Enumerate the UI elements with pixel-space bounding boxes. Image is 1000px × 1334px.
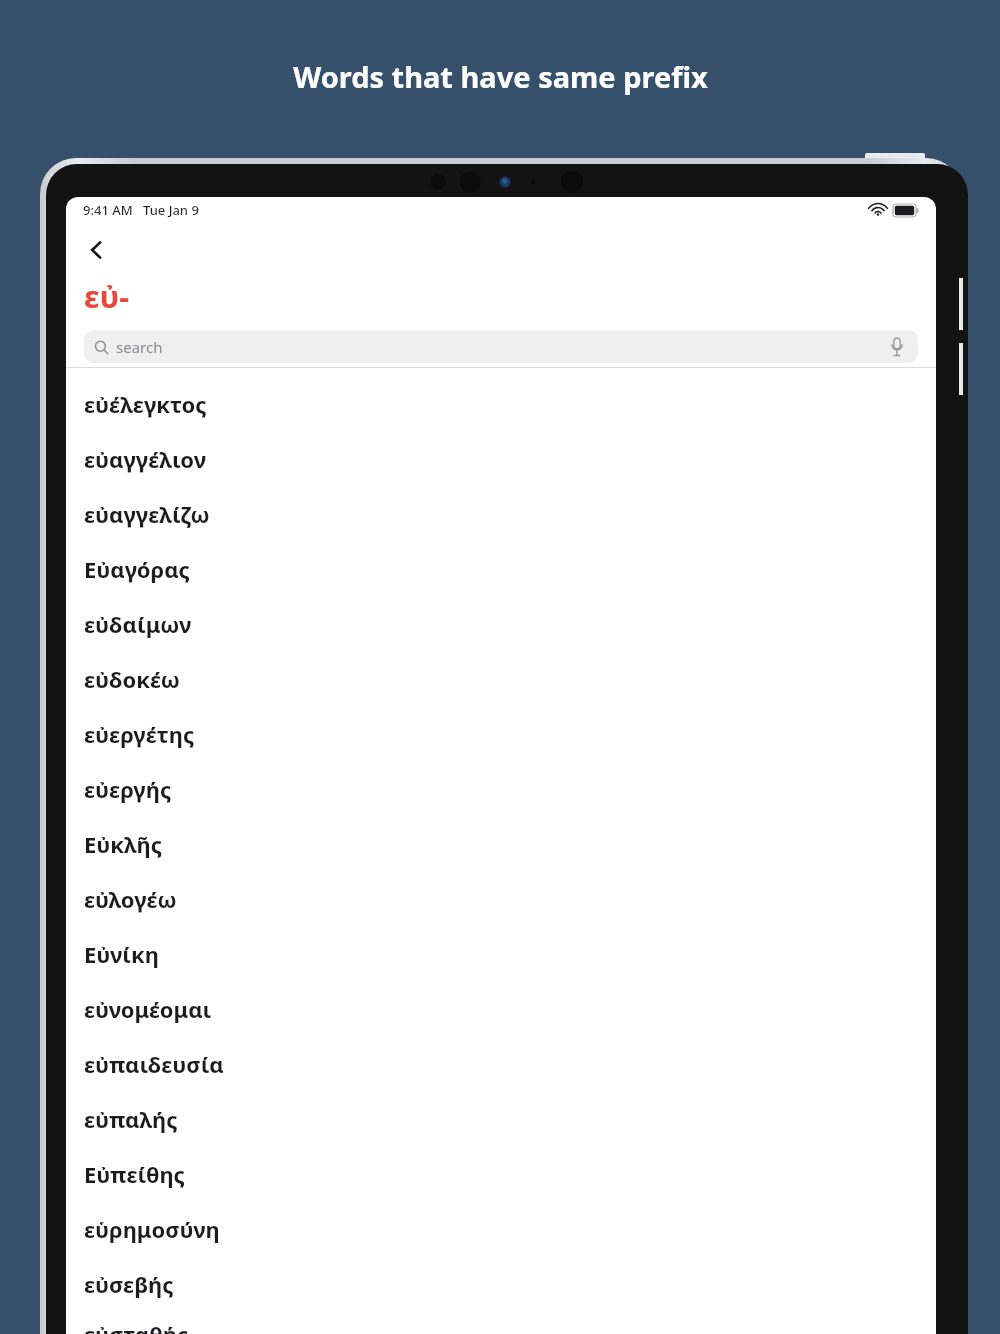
button[interactable]: εὐέλεγκτος [66,376,936,431]
staticText: εὐ- [84,275,130,317]
button[interactable]: εὐεργής [66,761,936,816]
button[interactable]: εὐδαίμων [66,596,936,651]
button[interactable]: εὐπαλής [66,1091,936,1146]
staticText: εὐπαιδευσία [84,1049,224,1079]
staticText: Εὐνίκη [84,939,159,969]
staticText: εὐεργέτης [84,719,195,749]
button[interactable]: Voice search [882,332,912,362]
staticText: Tue Jan 9 [143,201,199,219]
staticText: εὐδοκέω [84,664,180,694]
button[interactable]: εὐνομέομαι [66,981,936,1036]
staticText: εὑρημοσύνη [84,1214,220,1244]
button[interactable]: εὐαγγέλιον [66,431,936,486]
staticText: Words that have same prefix [293,57,708,96]
button[interactable]: Εὐνίκη [66,926,936,981]
staticText: εὐδαίμων [84,609,192,639]
button[interactable]: εὑρημοσύνη [66,1201,936,1256]
button[interactable]: Εὐπείθης [66,1146,936,1201]
staticText: εὐέλεγκτος [84,389,207,419]
staticText: εὐπαλής [84,1104,178,1134]
staticText: search [116,337,163,357]
staticText: εὐσεβής [84,1269,174,1299]
staticText: εὐεργής [84,774,172,804]
button[interactable]: εὐσεβής [66,1256,936,1311]
button[interactable]: εὐεργέτης [66,706,936,761]
button[interactable]: εὐδοκέω [66,651,936,706]
staticText: εὐαγγελίζω [84,499,210,529]
button[interactable]: search [84,330,918,363]
button[interactable]: Εὐκλῆς [66,816,936,871]
button[interactable]: εὐλογέω [66,871,936,926]
button[interactable]: εὐαγγελίζω [66,486,936,541]
button[interactable]: Back [74,227,120,273]
staticText: Εὐκλῆς [84,829,163,859]
staticText: Εὐαγόρας [84,554,190,584]
staticText: Εὐπείθης [84,1159,185,1189]
staticText: 9:41 AM [83,201,133,219]
staticText: εὐσταθής [84,1319,189,1334]
button[interactable]: Εὐαγόρας [66,541,936,596]
staticText: εὐλογέω [84,884,177,914]
button[interactable]: εὐπαιδευσία [66,1036,936,1091]
button[interactable]: εὐσταθής [66,1311,936,1334]
staticText: εὐαγγέλιον [84,444,207,474]
staticText: εὐνομέομαι [84,994,212,1024]
